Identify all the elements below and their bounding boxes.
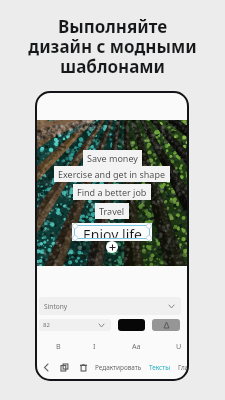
staticText: Save money xyxy=(87,152,138,164)
button[interactable]: Save money xyxy=(83,150,142,166)
staticText: U xyxy=(176,341,182,351)
staticText: Глав xyxy=(178,363,189,372)
button[interactable]: 82 xyxy=(39,319,111,331)
button[interactable]: Exercise and get in shape xyxy=(54,166,170,182)
button[interactable]: Delete xyxy=(76,360,90,374)
button[interactable]: Aa xyxy=(121,339,151,353)
staticText: Редактировать xyxy=(95,363,142,372)
button[interactable]: Text background colour xyxy=(152,319,180,331)
button[interactable]: I xyxy=(79,339,109,353)
button[interactable]: Travel xyxy=(95,203,129,219)
button[interactable]: Редактировать xyxy=(95,360,142,374)
staticText: Sintony xyxy=(44,302,68,311)
button[interactable]: U xyxy=(164,339,189,353)
button[interactable]: Глав xyxy=(178,360,189,374)
button[interactable]: B xyxy=(43,339,73,353)
button[interactable]: Enjoy life xyxy=(72,223,152,241)
staticText: 82 xyxy=(43,321,50,329)
button[interactable]: Text colour xyxy=(118,319,145,331)
staticText: Enjoy life xyxy=(83,225,142,239)
staticText: B xyxy=(56,341,61,351)
staticText: Travel xyxy=(99,205,125,217)
button[interactable]: Duplicate xyxy=(57,360,71,374)
button[interactable]: Sintony xyxy=(39,297,181,315)
staticText: Find a better job xyxy=(77,186,147,198)
staticText: Выполняйте дизайн с модными шаблонами xyxy=(28,15,197,78)
button[interactable]: Back xyxy=(39,360,53,374)
staticText: Тексты xyxy=(149,363,171,372)
staticText: Aa xyxy=(132,341,141,351)
button[interactable]: Find a better job xyxy=(73,184,151,200)
staticText: Exercise and get in shape xyxy=(58,168,166,180)
staticText: I xyxy=(93,341,96,351)
button[interactable]: Move text xyxy=(106,241,118,253)
button[interactable]: Тексты xyxy=(149,360,171,374)
